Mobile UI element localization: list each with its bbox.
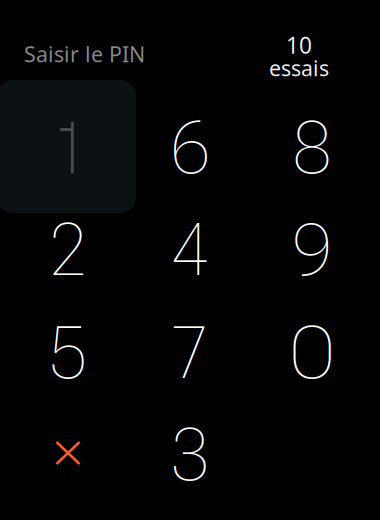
staticText: essais (269, 54, 329, 82)
staticText: 3 (171, 412, 209, 498)
staticText: 8 (292, 105, 331, 191)
button[interactable]: Supprimer (8, 403, 128, 503)
staticText: 2 (50, 207, 85, 293)
button[interactable]: 5 (8, 303, 128, 403)
staticText: 9 (293, 207, 331, 293)
staticText: 7 (171, 310, 208, 396)
button[interactable]: 8 (252, 98, 372, 198)
button[interactable]: 6 (130, 98, 250, 198)
staticText: 0 (289, 310, 334, 396)
button[interactable]: 4 (130, 200, 250, 300)
staticText: Saisir le PIN (24, 40, 145, 68)
staticText: 10 (286, 30, 312, 60)
button[interactable]: 0 (252, 303, 372, 403)
staticText: 5 (49, 310, 86, 396)
button[interactable]: 2 (8, 200, 128, 300)
button[interactable]: 9 (252, 200, 372, 300)
staticText: 6 (171, 105, 209, 191)
button[interactable]: 3 (130, 405, 250, 505)
staticText: 4 (171, 207, 208, 293)
button[interactable]: 7 (130, 303, 250, 403)
